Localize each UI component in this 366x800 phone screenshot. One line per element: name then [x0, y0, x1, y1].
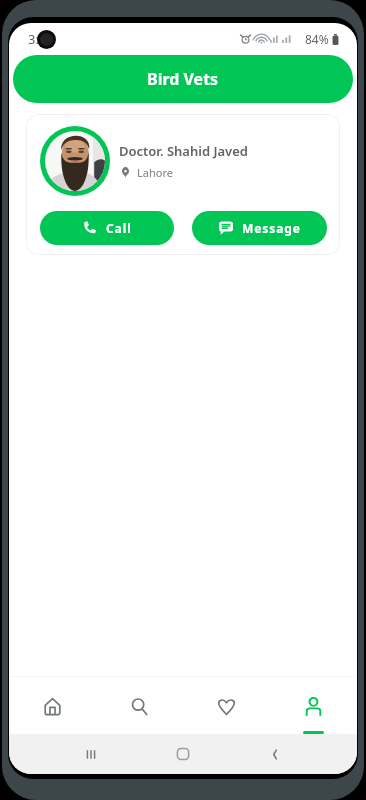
staticText: 84%: [305, 31, 329, 47]
button[interactable]: Back: [262, 741, 288, 767]
button[interactable]: Home: [9, 677, 96, 734]
staticText: Lahore: [137, 165, 173, 180]
staticText: Call: [106, 220, 132, 236]
button[interactable]: Profile: [270, 677, 357, 734]
staticText: Doctor. Shahid Javed: [119, 142, 248, 160]
button[interactable]: Favorites: [183, 677, 270, 734]
staticText: 3:: [28, 30, 39, 48]
button[interactable]: Call: [40, 211, 174, 245]
button[interactable]: Bird Vets: [13, 55, 353, 103]
button[interactable]: Search: [96, 677, 183, 734]
button[interactable]: Message: [192, 211, 327, 245]
staticText: Message: [242, 220, 301, 236]
button[interactable]: Recents: [78, 741, 104, 767]
staticText: Bird Vets: [147, 68, 219, 90]
button[interactable]: Home: [170, 741, 196, 767]
